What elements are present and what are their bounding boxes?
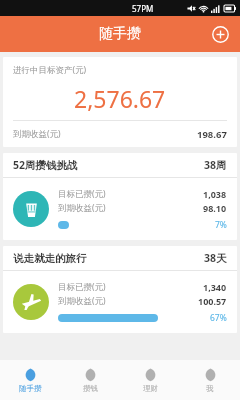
staticText: 100.57: [198, 295, 227, 307]
staticText: 到期收益(元): [13, 128, 61, 140]
staticText: 目标已攒(元): [58, 188, 106, 200]
button[interactable]: 说走就走的旅行: [3, 246, 237, 333]
staticText: 1,340: [203, 281, 227, 293]
staticText: 说走就走的旅行: [13, 252, 87, 265]
button[interactable]: 我: [180, 360, 240, 400]
staticText: 67%: [210, 312, 227, 324]
staticText: 进行中目标资产(元): [13, 64, 87, 76]
staticText: 52周攒钱挑战: [13, 158, 78, 172]
staticText: 198.67: [197, 128, 227, 141]
staticText: 38天: [204, 251, 227, 265]
staticText: 我: [206, 384, 214, 393]
button[interactable]: 进行中目标资产(元): [3, 57, 237, 147]
button[interactable]: 攒钱: [60, 360, 120, 400]
staticText: 57PM: [132, 3, 154, 14]
staticText: 38周: [204, 158, 227, 172]
staticText: 到期收益(元): [58, 202, 106, 214]
staticText: 攒钱: [83, 384, 98, 393]
staticText: 7%: [215, 219, 227, 231]
staticText: 理财: [143, 384, 158, 393]
staticText: 随手攒: [99, 25, 141, 43]
button[interactable]: Add: [208, 22, 232, 46]
staticText: 目标已攒(元): [58, 281, 106, 293]
staticText: 2,576.67: [74, 83, 166, 114]
button[interactable]: 理财: [120, 360, 180, 400]
staticText: 随手攒: [19, 384, 42, 393]
staticText: 到期收益(元): [58, 295, 106, 307]
button[interactable]: 随手攒: [0, 360, 60, 400]
button[interactable]: 52周攒钱挑战: [3, 153, 237, 240]
staticText: 1,038: [203, 188, 227, 200]
staticText: 98.10: [203, 202, 227, 214]
